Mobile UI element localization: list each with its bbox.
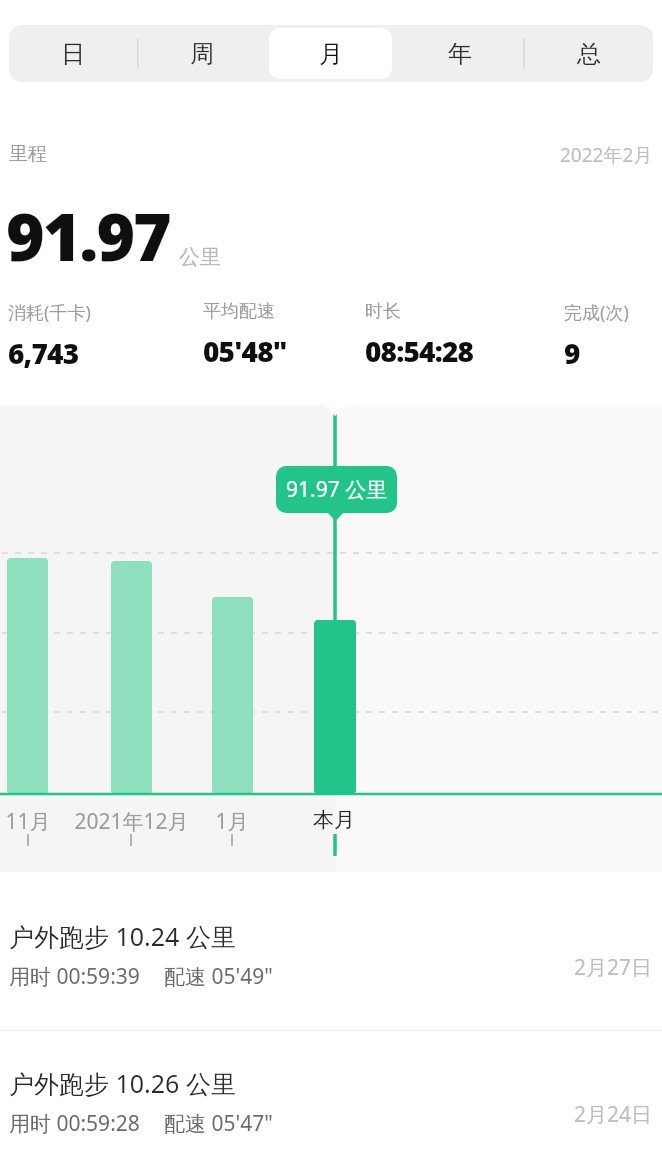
staticText: 2022年2月 bbox=[560, 142, 653, 168]
button[interactable]: 总 bbox=[527, 28, 650, 79]
staticText: 91.97 公里 bbox=[286, 475, 388, 504]
staticText: 公里 bbox=[179, 244, 221, 270]
staticText: 05'48" bbox=[203, 332, 287, 370]
staticText: 户外跑步 10.26 公里 bbox=[9, 1066, 236, 1100]
staticText: 2月24日 bbox=[574, 1100, 653, 1129]
button[interactable]: 周 bbox=[140, 28, 263, 79]
staticText: 用时 00:59:28 bbox=[9, 1109, 140, 1138]
staticText: 完成(次) bbox=[564, 300, 629, 325]
staticText: 6,743 bbox=[8, 334, 79, 372]
staticText: 时长 bbox=[365, 300, 401, 323]
staticText: 年 bbox=[448, 39, 472, 69]
button[interactable]: 户外跑步 10.26 公里 bbox=[0, 1022, 662, 1152]
staticText: 里程 bbox=[9, 142, 47, 166]
staticText: 周 bbox=[190, 39, 214, 69]
staticText: 配速 05'47" bbox=[164, 1109, 273, 1138]
staticText: 2021年12月 bbox=[74, 807, 189, 836]
button[interactable]: 91.97 公里 bbox=[276, 466, 397, 513]
staticText: 用时 00:59:39 bbox=[9, 962, 140, 991]
button[interactable]: 日 bbox=[12, 28, 134, 79]
staticText: 08:54:28 bbox=[365, 332, 474, 370]
button[interactable]: 户外跑步 10.24 公里 bbox=[0, 875, 662, 1005]
staticText: 9 bbox=[564, 334, 580, 372]
staticText: 91.97 bbox=[6, 190, 170, 280]
staticText: 本月 bbox=[313, 807, 355, 833]
staticText: 2月27日 bbox=[574, 953, 653, 982]
button[interactable]: 月 bbox=[269, 28, 392, 79]
staticText: 平均配速 bbox=[203, 300, 275, 323]
button[interactable]: 年 bbox=[398, 28, 521, 79]
staticText: 11月 bbox=[5, 807, 51, 836]
staticText: 1月 bbox=[215, 807, 249, 836]
staticText: 户外跑步 10.24 公里 bbox=[9, 919, 236, 953]
staticText: 日 bbox=[61, 39, 85, 69]
staticText: 配速 05'49" bbox=[164, 962, 273, 991]
staticText: 总 bbox=[577, 39, 601, 69]
staticText: 消耗(千卡) bbox=[8, 300, 91, 325]
staticText: 月 bbox=[319, 39, 343, 69]
